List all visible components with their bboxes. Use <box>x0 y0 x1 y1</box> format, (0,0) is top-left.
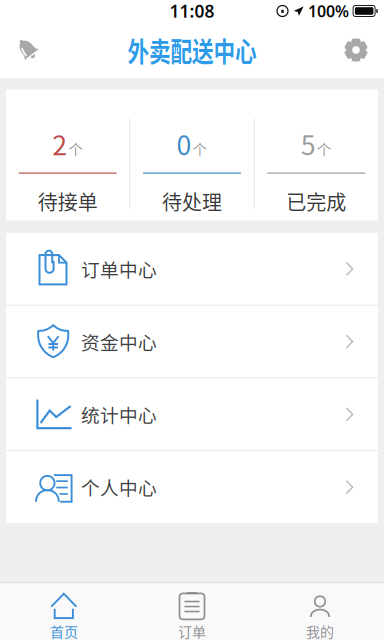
staticText: 个 <box>192 138 207 159</box>
staticText: 100% <box>308 0 349 22</box>
staticText: 我的 <box>306 621 334 640</box>
staticText: 订单 <box>178 621 206 640</box>
staticText: 首页 <box>50 621 78 640</box>
staticText: 11:08 <box>169 0 214 22</box>
button[interactable]: 2 <box>6 89 129 220</box>
button[interactable]: Settings <box>334 28 378 72</box>
staticText: 资金中心 <box>81 328 157 355</box>
staticText: 已完成 <box>286 187 346 216</box>
button[interactable]: 个人中心 <box>6 451 378 523</box>
staticText: 个 <box>68 138 83 159</box>
staticText: 5 <box>301 124 316 163</box>
staticText: 待接单 <box>38 187 98 216</box>
button[interactable]: 0 <box>130 89 254 220</box>
button[interactable]: 统计中心 <box>6 378 378 450</box>
staticText: 2 <box>52 124 67 163</box>
button[interactable]: 我的 <box>256 583 384 640</box>
staticText: 订单中心 <box>81 255 157 282</box>
button[interactable]: 首页 <box>0 583 128 640</box>
staticText: 待处理 <box>162 187 222 216</box>
button[interactable]: Notifications <box>6 28 50 72</box>
button[interactable]: 5 <box>255 89 378 220</box>
staticText: 统计中心 <box>81 401 157 428</box>
button[interactable]: 资金中心 <box>6 306 378 378</box>
staticText: 个 <box>317 138 332 159</box>
button[interactable]: 订单中心 <box>6 233 378 305</box>
button[interactable]: 订单 <box>128 583 256 640</box>
staticText: 0 <box>176 124 191 163</box>
staticText: 个人中心 <box>81 474 157 501</box>
staticText: 外卖配送中心 <box>105 29 279 71</box>
